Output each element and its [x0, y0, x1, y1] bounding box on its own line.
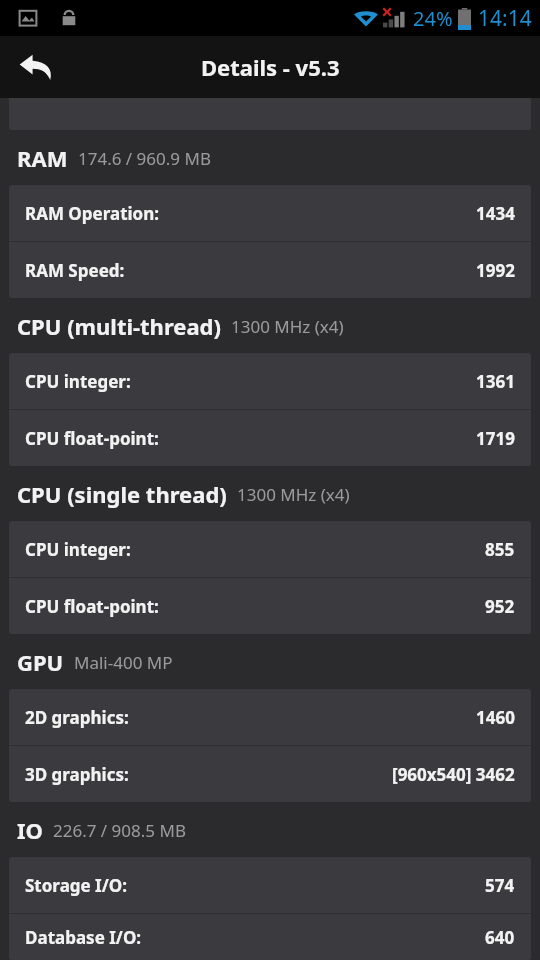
- staticText: CPU (single thread): [17, 479, 227, 509]
- staticText: 1992: [476, 259, 515, 282]
- staticText: 24%: [413, 5, 453, 32]
- button[interactable]: RAM Operation:: [9, 185, 531, 241]
- staticText: RAM Speed:: [25, 259, 125, 282]
- button[interactable]: Storage I/O:: [9, 857, 531, 913]
- staticText: RAM: [17, 143, 68, 173]
- staticText: 2D graphics:: [25, 706, 129, 729]
- staticText: CPU integer:: [25, 538, 131, 561]
- staticText: [960x540] 3462: [392, 763, 515, 786]
- staticText: 1300 MHz (x4): [231, 315, 344, 338]
- button[interactable]: CPU float-point:: [9, 410, 531, 466]
- staticText: 174.6 / 960.9 MB: [78, 147, 211, 170]
- button[interactable]: CPU integer:: [9, 521, 531, 577]
- button[interactable]: 3D graphics:: [9, 746, 531, 802]
- button[interactable]: Database I/O:: [9, 914, 531, 960]
- staticText: Mali-400 MP: [74, 651, 173, 674]
- staticText: Database I/O:: [25, 926, 142, 949]
- staticText: 574: [485, 874, 515, 897]
- staticText: 1300 MHz (x4): [237, 483, 350, 506]
- button[interactable]: CPU float-point:: [9, 578, 531, 634]
- staticText: 1719: [476, 427, 515, 450]
- staticText: IO: [17, 815, 43, 845]
- button[interactable]: Back: [8, 39, 64, 95]
- staticText: RAM Operation:: [25, 202, 160, 225]
- staticText: CPU integer:: [25, 370, 131, 393]
- staticText: 952: [485, 595, 515, 618]
- button[interactable]: 2D graphics:: [9, 689, 531, 745]
- staticText: 1361: [476, 370, 515, 393]
- staticText: CPU (multi-thread): [17, 311, 221, 341]
- staticText: 855: [485, 538, 515, 561]
- button[interactable]: CPU integer:: [9, 353, 531, 409]
- staticText: CPU float-point:: [25, 595, 159, 618]
- staticText: Storage I/O:: [25, 874, 128, 897]
- staticText: 1460: [476, 706, 515, 729]
- staticText: 3D graphics:: [25, 763, 129, 786]
- staticText: 14:14: [478, 4, 532, 33]
- staticText: 226.7 / 908.5 MB: [53, 819, 186, 842]
- staticText: CPU float-point:: [25, 427, 159, 450]
- staticText: GPU: [17, 647, 64, 677]
- staticText: 640: [485, 926, 515, 949]
- staticText: Details - v5.3: [201, 52, 340, 82]
- button[interactable]: RAM Speed:: [9, 242, 531, 298]
- staticText: 1434: [476, 202, 515, 225]
